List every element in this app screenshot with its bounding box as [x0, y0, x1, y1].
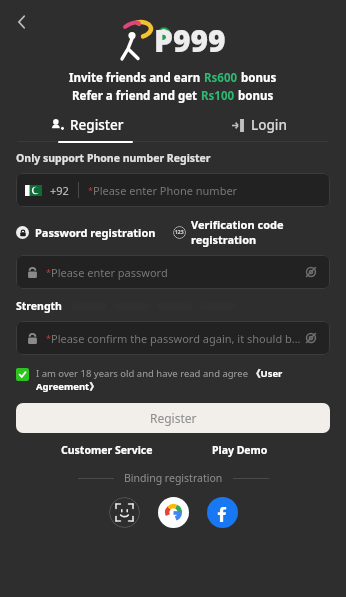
staticText: bonus [238, 70, 277, 86]
button[interactable]: Show password [302, 263, 320, 281]
button[interactable]: Login [173, 116, 346, 134]
button[interactable]: Show password [302, 329, 320, 347]
staticText: 123 [175, 229, 184, 236]
staticText: Only support Phone number Register [16, 151, 211, 165]
button[interactable]: Register [0, 116, 173, 134]
button[interactable]: Back [8, 8, 36, 36]
button[interactable]: +92 [16, 173, 330, 207]
staticText: Binding registration [124, 471, 223, 485]
button[interactable]: 123 [173, 217, 330, 247]
staticText: Register [70, 116, 124, 134]
staticText: Please enter password [51, 265, 168, 280]
staticText: +92 [50, 183, 69, 198]
staticText: Agreement》 [36, 380, 99, 393]
button[interactable]: Password registration [16, 225, 173, 240]
button[interactable]: Customer Service [40, 443, 173, 457]
staticText: Rs600 [204, 70, 238, 86]
button[interactable]: Play Demo [173, 443, 306, 457]
staticText: Please enter Phone number [93, 183, 238, 198]
staticText: I am over 18 years old and have read and… [36, 367, 251, 380]
button[interactable]: Google login [158, 497, 189, 528]
staticText: P999 [154, 20, 226, 61]
staticText: * [46, 266, 51, 278]
button[interactable]: Facebook login [207, 497, 238, 528]
staticText: Login [251, 116, 287, 134]
staticText: Please confirm the password again, it sh… [51, 331, 302, 346]
button[interactable]: I am over 18 years old and have read and… [16, 367, 330, 393]
staticText: Strength [16, 299, 62, 313]
staticText: Play Demo [212, 443, 268, 457]
button[interactable]: Face ID login [109, 497, 140, 528]
staticText: * [88, 184, 93, 196]
button[interactable]: Register [16, 403, 330, 433]
button[interactable]: * [16, 255, 330, 289]
staticText: Verification code registration [191, 217, 330, 247]
staticText: Rs100 [201, 88, 235, 104]
button[interactable]: * [16, 321, 330, 355]
staticText: bonus [235, 88, 274, 104]
staticText: 《User [251, 367, 283, 380]
staticText: Invite friends and earn [69, 70, 204, 86]
staticText: * [46, 332, 51, 344]
staticText: Refer a friend and get [72, 88, 201, 104]
staticText: Register [150, 410, 197, 426]
staticText: Password registration [35, 225, 156, 240]
staticText: Customer Service [61, 443, 153, 457]
